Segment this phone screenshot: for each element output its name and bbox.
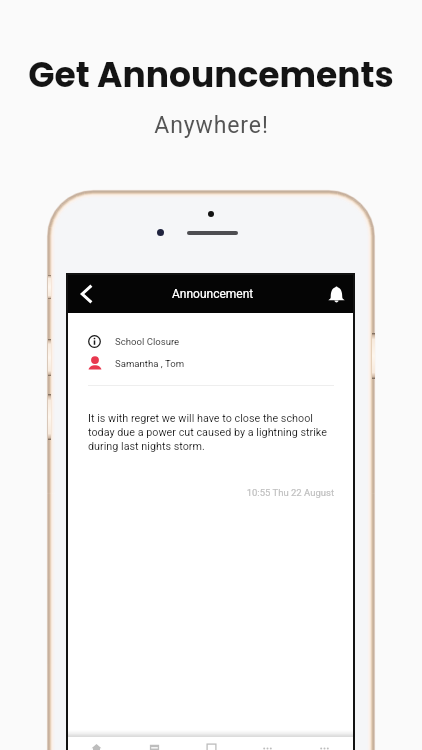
staticText: Announcement — [172, 287, 254, 301]
staticText: Samantha , Tom — [115, 358, 185, 369]
staticText: Anywhere! — [154, 112, 269, 139]
staticText: 10:55 Thu 22 August — [88, 487, 334, 498]
staticText: It is with regret we will have to close … — [88, 412, 334, 453]
staticText: Get Announcements — [28, 51, 394, 99]
button[interactable]: Notifications — [320, 275, 353, 313]
button[interactable]: More — [296, 737, 353, 750]
button[interactable]: News — [182, 737, 239, 750]
button[interactable]: Back — [68, 275, 106, 313]
button[interactable]: Diary — [125, 737, 182, 750]
button[interactable]: Events — [239, 737, 296, 750]
button[interactable]: Home — [68, 737, 125, 750]
staticText: School Closure — [115, 336, 180, 347]
